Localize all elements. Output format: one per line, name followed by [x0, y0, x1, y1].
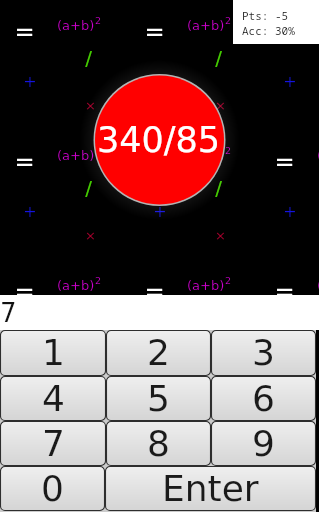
- staticText: (a+b): [187, 278, 225, 293]
- staticText: /: [215, 46, 222, 69]
- button[interactable]: 6: [211, 376, 316, 421]
- button[interactable]: 4: [0, 376, 106, 421]
- staticText: 1: [42, 332, 65, 374]
- staticText: =: [274, 18, 295, 46]
- staticText: 0: [41, 468, 64, 510]
- staticText: 7: [0, 298, 17, 328]
- staticText: +: [23, 72, 37, 91]
- staticText: (a+b): [187, 18, 225, 33]
- staticText: 2: [147, 332, 170, 374]
- staticText: Pts: -5: [242, 8, 289, 23]
- staticText: (a+b): [57, 278, 95, 293]
- staticText: ×: [215, 98, 226, 113]
- staticText: 6: [252, 378, 275, 420]
- staticText: +: [153, 202, 167, 221]
- staticText: ×: [85, 228, 96, 243]
- staticText: (a+b): [317, 148, 319, 163]
- staticText: (a+b): [317, 278, 319, 293]
- staticText: (a+b): [57, 18, 95, 33]
- staticText: 2: [225, 275, 232, 286]
- staticText: 8: [147, 423, 170, 465]
- staticText: /: [85, 176, 92, 199]
- staticText: ×: [85, 98, 96, 113]
- staticText: Acc: 30%: [242, 23, 295, 38]
- staticText: +: [283, 332, 297, 351]
- staticText: =: [274, 278, 295, 306]
- staticText: 2: [95, 15, 102, 26]
- button[interactable]: 9: [211, 421, 316, 466]
- staticText: =: [14, 278, 35, 306]
- staticText: =: [14, 18, 35, 46]
- staticText: =: [144, 148, 165, 176]
- button[interactable]: 3: [211, 330, 316, 376]
- staticText: /: [215, 176, 222, 199]
- staticText: +: [23, 202, 37, 221]
- staticText: =: [274, 148, 295, 176]
- staticText: ×: [215, 228, 226, 243]
- staticText: +: [153, 332, 167, 351]
- button[interactable]: 0: [0, 466, 105, 511]
- staticText: 2: [225, 145, 232, 156]
- staticText: (a+b): [187, 148, 225, 163]
- button[interactable]: 1: [0, 330, 106, 376]
- staticText: 5: [147, 378, 170, 420]
- staticText: (a+b): [57, 148, 95, 163]
- staticText: 4: [42, 378, 65, 420]
- staticText: +: [23, 332, 37, 351]
- staticText: 9: [252, 423, 275, 465]
- button[interactable]: 2: [106, 330, 211, 376]
- staticText: =: [144, 18, 165, 46]
- button[interactable]: 8: [106, 421, 211, 466]
- button[interactable]: 5: [106, 376, 211, 421]
- staticText: /: [85, 46, 92, 69]
- button[interactable]: 7: [0, 421, 106, 466]
- staticText: =: [14, 148, 35, 176]
- staticText: 2: [225, 15, 232, 26]
- staticText: Enter: [162, 468, 259, 510]
- button[interactable]: Enter: [105, 466, 316, 511]
- staticText: 2: [95, 275, 102, 286]
- staticText: +: [283, 72, 297, 91]
- button[interactable]: Bubble 340/85: [94, 75, 224, 205]
- staticText: 2: [95, 145, 102, 156]
- staticText: 7: [42, 423, 65, 465]
- staticText: =: [144, 278, 165, 306]
- staticText: 3: [252, 332, 275, 374]
- staticText: 340/85: [97, 120, 221, 161]
- staticText: +: [153, 72, 167, 91]
- staticText: +: [283, 202, 297, 221]
